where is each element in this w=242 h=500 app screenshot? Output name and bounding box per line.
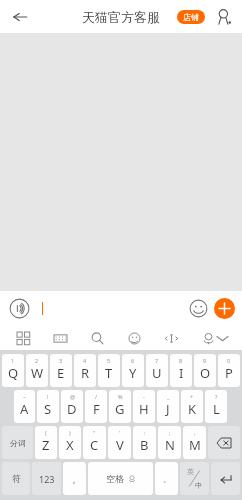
- staticText: ': [119, 429, 121, 436]
- staticText: -: [143, 393, 145, 400]
- button[interactable]: Emoji: [186, 296, 210, 320]
- button[interactable]: ': [108, 426, 131, 459]
- button[interactable]: ;: [158, 426, 181, 459]
- button[interactable]: 2: [26, 354, 48, 387]
- button[interactable]: Keyboard: [50, 328, 70, 348]
- button[interactable]: (: [35, 426, 57, 459]
- button[interactable]: ": [83, 426, 106, 459]
- staticText: 6: [131, 357, 135, 364]
- button[interactable]: 6: [122, 354, 144, 387]
- button[interactable]: 符: [2, 462, 30, 495]
- staticText: T: [105, 364, 113, 382]
- staticText: 0: [227, 357, 231, 364]
- button[interactable]: _: [157, 390, 179, 423]
- staticText: K: [188, 400, 197, 418]
- button[interactable]: +: [181, 390, 203, 423]
- button[interactable]: 123: [32, 462, 61, 495]
- button[interactable]: 0: [218, 354, 240, 387]
- button[interactable]: 8: [170, 354, 192, 387]
- button[interactable]: 5: [98, 354, 120, 387]
- staticText: Z: [42, 436, 50, 454]
- button[interactable]: More: [214, 298, 235, 319]
- staticText: 。: [163, 474, 171, 484]
- staticText: @: [70, 393, 75, 400]
- staticText: E: [57, 364, 65, 382]
- staticText: U: [152, 364, 162, 382]
- button[interactable]: Back: [6, 3, 34, 31]
- staticText: 3: [59, 357, 63, 364]
- staticText: Y: [129, 364, 137, 382]
- staticText: P: [225, 364, 233, 382]
- button[interactable]: ~: [14, 390, 35, 423]
- button[interactable]: Emoji: [124, 328, 144, 348]
- staticText: H: [139, 400, 149, 418]
- button[interactable]: !: [37, 390, 59, 423]
- staticText: (: [45, 429, 47, 436]
- staticText: :: [144, 429, 146, 436]
- staticText: 空格: [106, 473, 124, 484]
- button[interactable]: :: [133, 426, 156, 459]
- staticText: 英: [187, 467, 194, 476]
- staticText: 分词: [10, 438, 26, 448]
- staticText: 天猫官方客服: [82, 9, 160, 25]
- button[interactable]: ): [59, 426, 81, 459]
- button[interactable]: Enter: [211, 462, 240, 495]
- button[interactable]: Apps: [13, 328, 33, 348]
- staticText: _: [167, 393, 170, 400]
- button[interactable]: Microphone: [198, 328, 218, 348]
- staticText: ,: [73, 473, 76, 485]
- staticText: B: [140, 436, 149, 454]
- button[interactable]: Text tool: [161, 328, 181, 348]
- button[interactable]: Search: [87, 328, 107, 348]
- button[interactable]: Voice input: [7, 296, 31, 320]
- button[interactable]: Collapse: [212, 328, 232, 348]
- staticText: X: [66, 436, 74, 454]
- button[interactable]: ,: [63, 462, 86, 495]
- staticText: 4: [83, 357, 87, 364]
- staticText: 7: [155, 357, 159, 364]
- staticText: 5: [107, 357, 111, 364]
- staticText: 1: [11, 357, 15, 364]
- button[interactable]: 7: [146, 354, 168, 387]
- button[interactable]: 。: [155, 462, 178, 495]
- staticText: N: [165, 436, 175, 454]
- button[interactable]: 9: [194, 354, 216, 387]
- staticText: ": [93, 429, 96, 436]
- staticText: 中: [195, 481, 202, 490]
- staticText: L: [213, 400, 220, 418]
- button[interactable]: Language toggle: [180, 462, 209, 495]
- button[interactable]: Backspace: [208, 426, 240, 459]
- button[interactable]: 店铺: [177, 10, 205, 24]
- button[interactable]: ?: [205, 390, 227, 423]
- button[interactable]: 空格: [88, 462, 153, 495]
- button[interactable]: /: [85, 390, 107, 423]
- staticText: M: [189, 436, 201, 454]
- staticText: !: [47, 393, 49, 400]
- staticText: D: [67, 400, 77, 418]
- button[interactable]: [36, 296, 182, 320]
- button[interactable]: -: [133, 390, 155, 423]
- button[interactable]: 4: [74, 354, 96, 387]
- staticText: W: [31, 364, 44, 382]
- staticText: %: [118, 393, 123, 400]
- button[interactable]: 分词: [2, 426, 33, 459]
- staticText: V: [116, 436, 124, 454]
- staticText: S: [44, 400, 52, 418]
- staticText: 9: [203, 357, 207, 364]
- button[interactable]: 3: [50, 354, 72, 387]
- button[interactable]: ,: [183, 426, 206, 459]
- staticText: 店铺: [183, 12, 199, 22]
- staticText: A: [20, 400, 29, 418]
- button[interactable]: %: [109, 390, 131, 423]
- button[interactable]: 1: [2, 354, 24, 387]
- staticText: 123: [39, 473, 55, 485]
- staticText: 2: [35, 357, 39, 364]
- staticText: ~: [23, 393, 27, 400]
- staticText: ;: [169, 429, 171, 436]
- button[interactable]: Contact: [212, 5, 236, 29]
- staticText: O: [200, 364, 211, 382]
- staticText: J: [166, 400, 170, 418]
- staticText: 符: [12, 473, 21, 484]
- staticText: F: [93, 400, 100, 418]
- button[interactable]: @: [61, 390, 83, 423]
